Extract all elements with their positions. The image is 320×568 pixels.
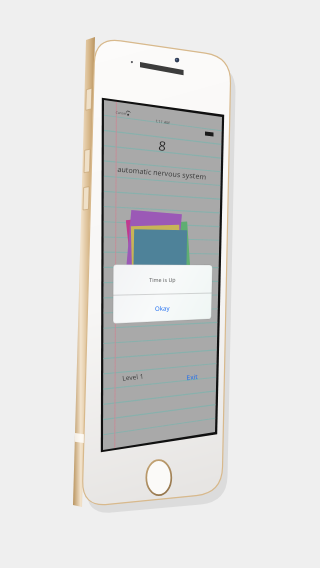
- button[interactable]: Okay: [115, 286, 210, 312]
- button[interactable]: Exit: [183, 371, 211, 387]
